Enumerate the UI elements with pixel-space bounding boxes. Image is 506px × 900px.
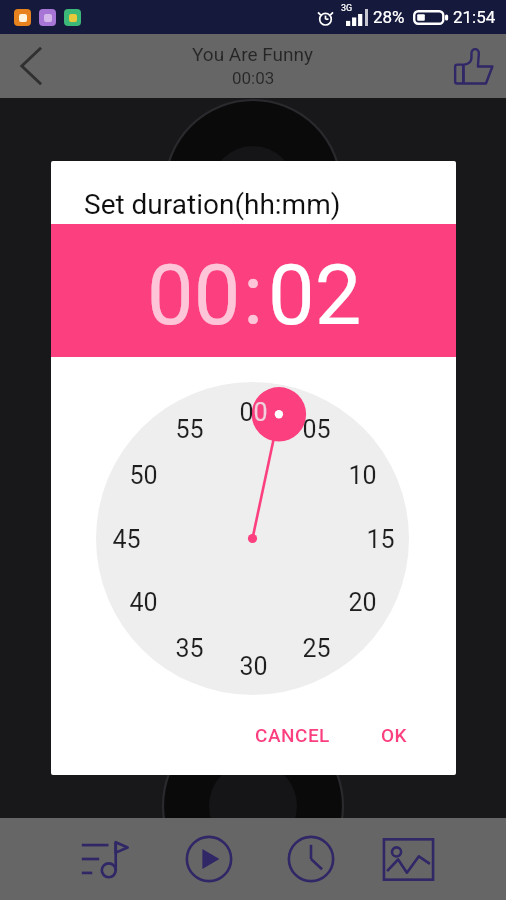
staticText: 00 xyxy=(147,247,241,344)
button[interactable]: 02 xyxy=(268,247,362,344)
button[interactable]: OK xyxy=(365,714,424,756)
staticText: OK xyxy=(381,724,408,746)
button[interactable]: 00 xyxy=(147,247,241,344)
staticText: 02 xyxy=(268,247,362,344)
staticText: 55 xyxy=(175,415,204,444)
button[interactable]: Like xyxy=(442,34,506,98)
staticText: 35 xyxy=(175,634,204,663)
button[interactable]: CANCEL xyxy=(239,714,346,756)
staticText: 10 xyxy=(348,461,377,490)
staticText: 20 xyxy=(348,588,377,617)
staticText: 00:03 xyxy=(232,68,275,88)
staticText: 50 xyxy=(129,461,158,490)
button[interactable]: Playlist xyxy=(65,818,145,900)
button[interactable]: Gallery xyxy=(368,818,448,900)
staticText: 28% xyxy=(373,7,405,27)
staticText: 3G xyxy=(341,3,353,14)
button[interactable]: Back xyxy=(0,34,64,98)
staticText: Set duration(hh:mm) xyxy=(84,188,341,221)
button[interactable]: Timer xyxy=(271,818,351,900)
staticText: 30 xyxy=(239,652,268,681)
staticText: 15 xyxy=(366,525,395,554)
staticText: CANCEL xyxy=(255,724,330,746)
button[interactable]: Play xyxy=(169,818,249,900)
staticText: 45 xyxy=(112,525,141,554)
staticText: 05 xyxy=(302,415,331,444)
staticText: 21:54 xyxy=(453,7,496,27)
staticText: : xyxy=(243,247,264,344)
staticText: 0 xyxy=(253,398,268,427)
staticText: 40 xyxy=(129,588,158,617)
staticText: 00 xyxy=(239,398,268,427)
staticText: 25 xyxy=(302,634,331,663)
staticText: You Are Funny xyxy=(192,43,314,65)
